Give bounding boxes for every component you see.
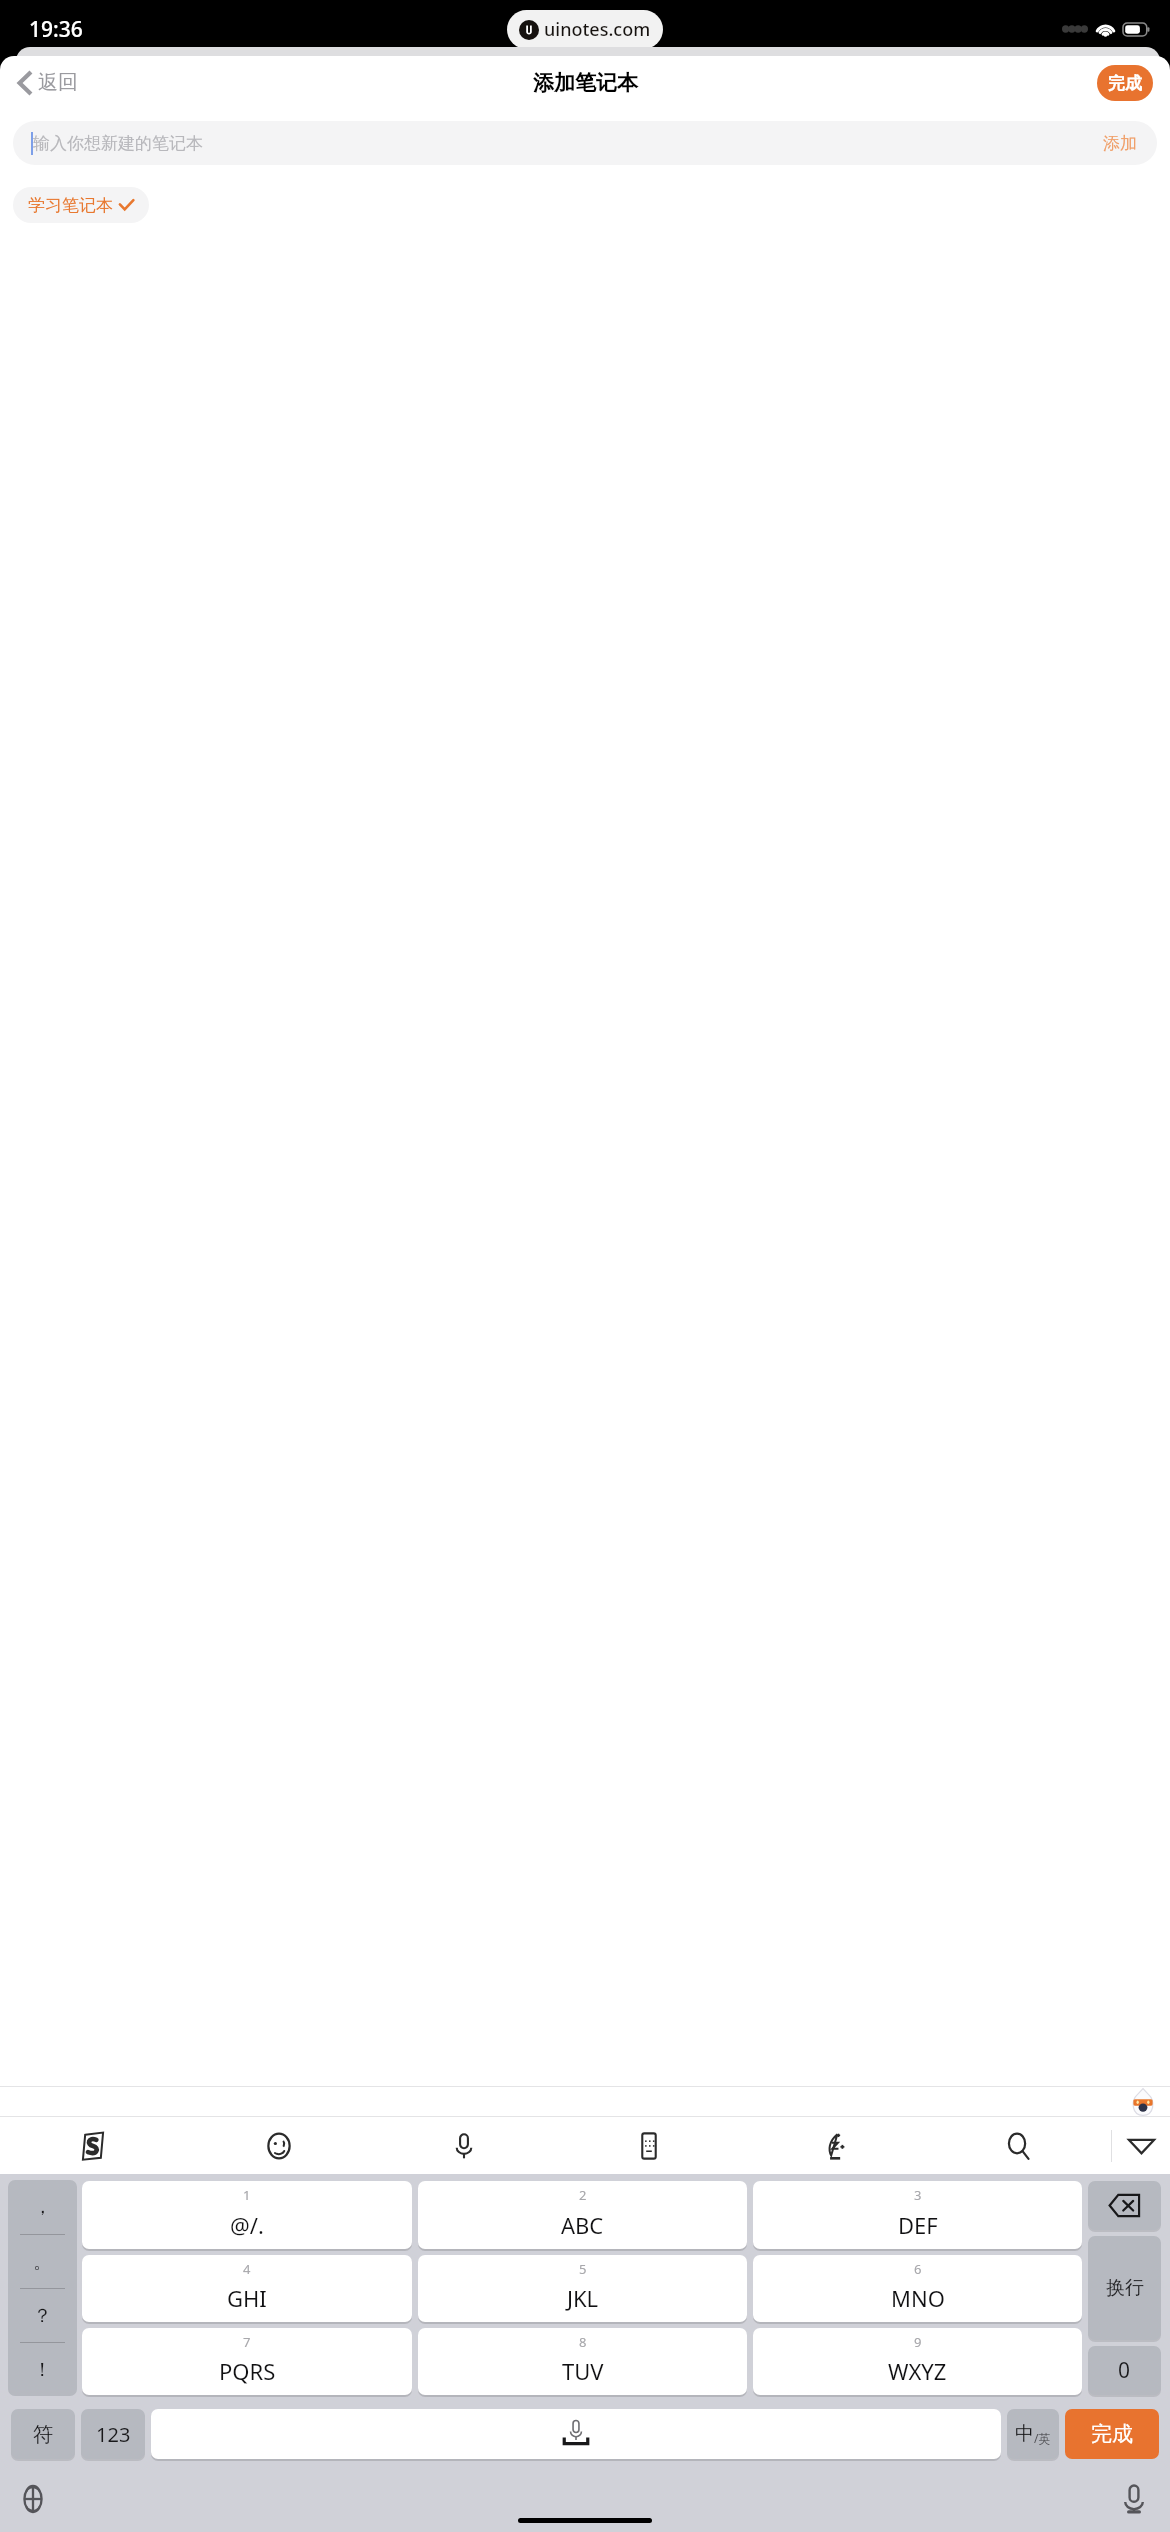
staticText: @/. [230, 2210, 264, 2240]
button[interactable]: ， [8, 2180, 77, 2234]
staticText: 换行 [1106, 2276, 1144, 2300]
other: Sogou assistant [1130, 2088, 1156, 2116]
button[interactable]: Search [926, 2117, 1111, 2174]
staticText: TUV [562, 2356, 604, 2386]
button[interactable]: 7 [82, 2328, 412, 2395]
button[interactable]: 学习笔记本 [13, 187, 149, 223]
button[interactable]: 2 [418, 2181, 747, 2249]
button[interactable]: Sogou [0, 2117, 186, 2174]
button[interactable]: 返回 [12, 64, 84, 101]
button[interactable]: 输入你想新建的笔记本 [13, 121, 1157, 165]
staticText: 符 [33, 2422, 53, 2447]
staticText: 7 [243, 2333, 251, 2351]
staticText: 完成 [1091, 2421, 1133, 2447]
staticText: /英 [1034, 2430, 1051, 2446]
button[interactable]: 9 [753, 2328, 1082, 2395]
staticText: ABC [561, 2210, 604, 2240]
button[interactable]: 符 [11, 2409, 75, 2459]
button[interactable]: 3 [753, 2181, 1082, 2249]
button[interactable]: 1 [82, 2181, 412, 2249]
staticText: 19:36 [29, 15, 83, 44]
staticText: GHI [227, 2283, 267, 2313]
staticText: ！ [33, 2358, 52, 2382]
staticText: 4 [243, 2260, 251, 2278]
staticText: uinotes.com [544, 17, 651, 42]
staticText: 添加 [1103, 133, 1137, 154]
staticText: 123 [96, 2421, 131, 2448]
button[interactable]: Hide keyboard [1112, 2117, 1170, 2174]
button[interactable]: Delete [1088, 2181, 1161, 2230]
staticText: 3 [914, 2186, 922, 2204]
button[interactable]: Keyboard settings [556, 2117, 741, 2174]
staticText: 返回 [38, 70, 78, 95]
staticText: 8 [579, 2333, 587, 2351]
staticText: ， [33, 2195, 52, 2219]
button[interactable]: 0 [1088, 2346, 1161, 2395]
staticText: ？ [33, 2304, 52, 2328]
button[interactable]: 完成 [1065, 2409, 1159, 2459]
button[interactable]: Space [151, 2409, 1001, 2459]
staticText: MNO [891, 2283, 945, 2313]
staticText: 1 [243, 2186, 251, 2204]
button[interactable]: 。 [8, 2235, 77, 2288]
staticText: 完成 [1108, 73, 1142, 94]
button[interactable]: 中 [1007, 2409, 1059, 2459]
button[interactable]: 8 [418, 2328, 747, 2395]
staticText: JKL [567, 2283, 599, 2313]
button[interactable]: Voice input [371, 2117, 556, 2174]
button[interactable]: 换行 [1088, 2236, 1161, 2340]
staticText: 中 [1015, 2422, 1034, 2446]
staticText: 学习笔记本 [28, 195, 113, 216]
button[interactable]: 123 [81, 2409, 145, 2459]
staticText: PQRS [219, 2356, 276, 2386]
staticText: 0 [1118, 2356, 1131, 2385]
staticText: 输入你想新建的笔记本 [33, 133, 1103, 154]
staticText: WXYZ [888, 2356, 947, 2386]
button[interactable]: 5 [418, 2255, 747, 2322]
button[interactable]: 4 [82, 2255, 412, 2322]
staticText: 2 [579, 2186, 587, 2204]
staticText: 添加笔记本 [533, 70, 638, 96]
button[interactable]: Handwriting [741, 2117, 926, 2174]
button[interactable]: ！ [8, 2343, 77, 2396]
staticText: 。 [33, 2250, 52, 2274]
button[interactable]: 完成 [1097, 65, 1153, 101]
staticText: DEF [898, 2210, 938, 2240]
button[interactable]: Change language [17, 2483, 49, 2515]
staticText: 5 [579, 2260, 587, 2278]
button[interactable]: Voice input [1118, 2483, 1150, 2515]
button[interactable]: Emoji [186, 2117, 371, 2174]
staticText: 9 [914, 2333, 922, 2351]
button[interactable]: 6 [753, 2255, 1082, 2322]
button[interactable]: ？ [8, 2289, 77, 2342]
staticText: 6 [914, 2260, 922, 2278]
